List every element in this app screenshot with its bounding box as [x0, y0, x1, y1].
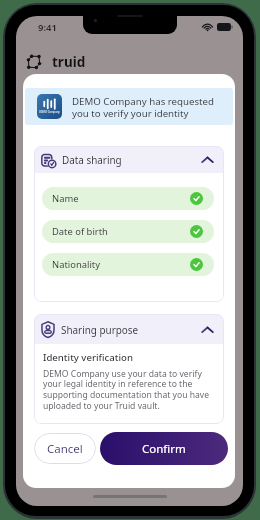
other: Collapse section — [201, 323, 214, 336]
button[interactable]: Nationality — [42, 253, 214, 276]
button[interactable]: Cancel — [34, 433, 96, 464]
button[interactable]: Date of birth — [42, 220, 214, 243]
staticText: DEMO Company use your data to verify you… — [43, 368, 218, 412]
staticText: Cancel — [47, 441, 83, 457]
staticText: DEMO Company has requested you to verify… — [72, 95, 215, 119]
staticText: Confirm — [142, 441, 186, 457]
button[interactable]: Sharing purpose — [34, 314, 224, 344]
staticText: DEMO Company — [39, 110, 60, 114]
other: Collapse section — [201, 153, 214, 166]
staticText: Data sharing — [62, 153, 122, 166]
staticText: truid — [52, 53, 86, 71]
button[interactable]: Name — [42, 187, 214, 210]
staticText: Nationality — [52, 258, 100, 271]
button[interactable]: Data sharing — [34, 146, 224, 173]
staticText: Name — [52, 192, 79, 205]
staticText: Identity verification — [43, 351, 133, 364]
staticText: Sharing purpose — [61, 323, 139, 336]
button[interactable]: Confirm — [100, 432, 228, 465]
staticText: Date of birth — [52, 225, 108, 238]
staticText: 9:41 — [38, 21, 57, 34]
